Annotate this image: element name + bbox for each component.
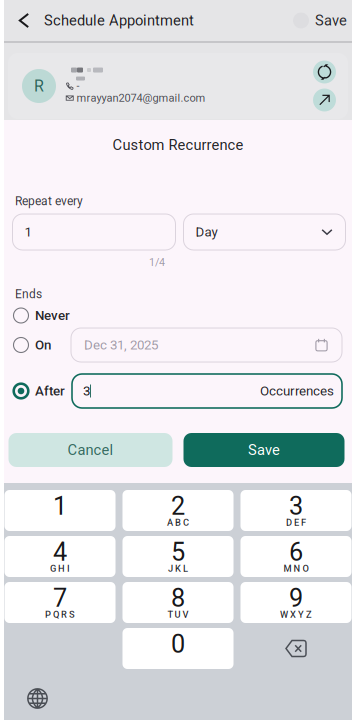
staticText: T U V — [167, 609, 188, 620]
button[interactable]: Open in new — [313, 88, 336, 111]
button[interactable]: Sync — [313, 60, 336, 83]
button[interactable]: Switch keyboard — [4, 669, 48, 709]
staticText: 3 — [289, 491, 303, 521]
staticText: W X Y Z — [280, 609, 312, 620]
staticText: R — [34, 77, 44, 95]
staticText: mrayyan2074@gmail.com — [76, 91, 205, 104]
button[interactable]: 2 — [122, 490, 233, 531]
staticText: On — [35, 337, 51, 353]
button[interactable]: Never — [4, 303, 352, 328]
staticText: 1 — [53, 491, 67, 521]
button[interactable]: 8 — [122, 582, 233, 623]
staticText: Save — [248, 441, 280, 459]
button[interactable]: Save — [309, 0, 352, 41]
staticText: 1 — [24, 224, 31, 240]
staticText: Cancel — [67, 441, 113, 459]
staticText: 6 — [289, 537, 303, 567]
button[interactable]: Delete — [240, 628, 351, 669]
staticText: 2 — [171, 491, 185, 521]
staticText: - — [76, 80, 79, 92]
staticText: Day — [195, 224, 217, 240]
staticText: J K L — [168, 563, 188, 574]
staticText: Ends — [15, 287, 42, 301]
button[interactable]: 1 — [4, 490, 115, 531]
button[interactable]: 7 — [4, 582, 115, 623]
button[interactable]: 6 — [240, 536, 351, 577]
staticText: Custom Recurrence — [112, 136, 243, 154]
staticText: M N O — [283, 563, 308, 574]
button[interactable]: Back — [4, 0, 44, 41]
staticText: G H I — [50, 563, 70, 574]
staticText: Schedule Appointment — [44, 12, 194, 29]
staticText: A B C — [167, 517, 189, 528]
staticText: 0 — [171, 629, 185, 659]
staticText: Never — [35, 308, 70, 323]
staticText: Save — [315, 12, 347, 29]
staticText: 8 — [171, 583, 185, 613]
button[interactable]: 3 — [240, 490, 351, 531]
button[interactable]: 4 — [4, 536, 115, 577]
button[interactable]: On — [4, 328, 71, 362]
staticText: Dec 31, 2025 — [84, 337, 158, 353]
staticText: D E F — [286, 517, 306, 528]
button[interactable]: 9 — [240, 582, 351, 623]
button[interactable]: 5 — [122, 536, 233, 577]
staticText: Occurrences — [260, 383, 334, 399]
button[interactable]: After — [4, 374, 72, 408]
staticText: 4 — [53, 537, 67, 567]
button[interactable]: Save — [183, 433, 344, 467]
staticText: 5 — [171, 537, 185, 567]
staticText: 9 — [289, 583, 303, 613]
button[interactable]: 0 — [122, 628, 233, 669]
button[interactable]: Day — [183, 214, 345, 250]
button[interactable]: Dec 31, 2025 — [71, 328, 342, 362]
staticText: 3 — [83, 383, 90, 399]
button[interactable]: Cancel — [8, 433, 172, 467]
staticText: Repeat every — [15, 194, 83, 208]
staticText: P Q R S — [45, 609, 75, 620]
staticText: 1/4 — [149, 256, 165, 268]
staticText: After — [35, 383, 65, 399]
staticText: 7 — [53, 583, 67, 613]
